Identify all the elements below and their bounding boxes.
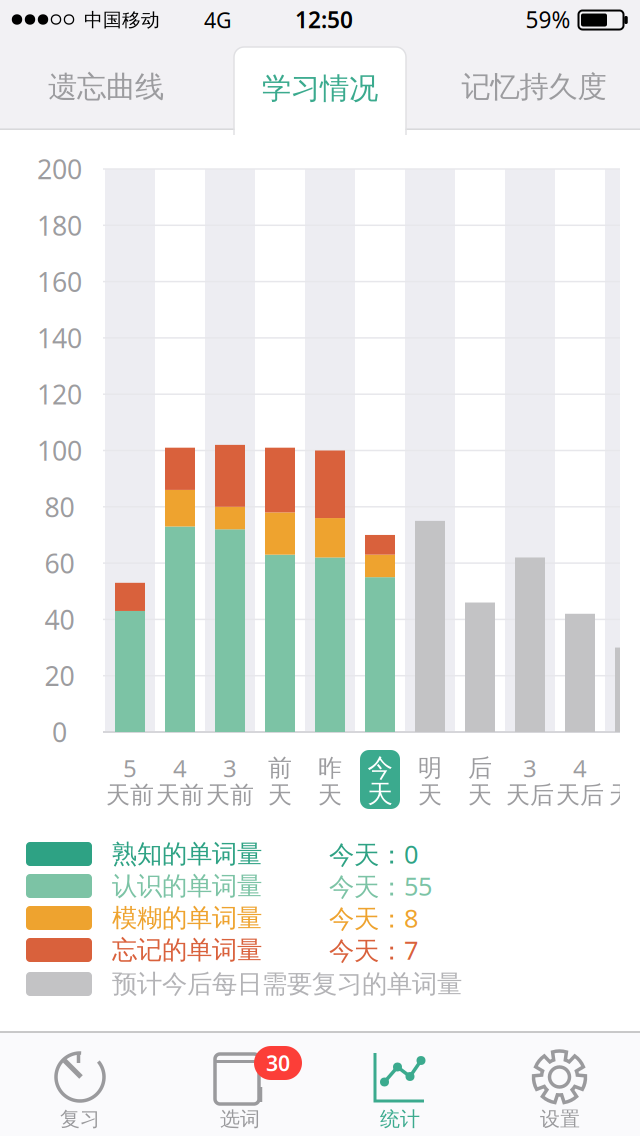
staticText: 设置 — [540, 1107, 580, 1131]
staticText: 120 — [37, 376, 82, 412]
staticText: 天后 — [506, 780, 554, 810]
staticText: 今天：7 — [329, 933, 418, 967]
staticText: 前 — [268, 753, 292, 783]
staticText: 0 — [52, 714, 67, 750]
staticText: 40 — [44, 602, 74, 637]
staticText: 遗忘曲线 — [48, 69, 164, 105]
staticText: 天前 — [206, 780, 254, 810]
staticText: 天前 — [156, 780, 204, 810]
staticText: 100 — [37, 433, 82, 468]
button[interactable]: 设置 — [480, 1032, 640, 1136]
staticText: 3 — [523, 752, 537, 784]
staticText: 天 — [468, 780, 492, 810]
staticText: 记忆持久度 — [461, 69, 606, 105]
button[interactable]: 统计 — [320, 1032, 480, 1136]
staticText: 200 — [37, 151, 82, 187]
staticText: 3 — [223, 752, 237, 784]
staticText: 忘记的单词量 — [112, 934, 262, 965]
staticText: 5 — [123, 752, 137, 784]
staticText: 昨 — [318, 753, 342, 783]
staticText: 80 — [44, 489, 74, 524]
staticText: 天 — [268, 780, 292, 810]
staticText: 认识的单词量 — [112, 870, 262, 901]
staticText: 180 — [37, 208, 82, 243]
button[interactable]: 30 — [160, 1032, 320, 1136]
staticText: 学习情况 — [262, 70, 378, 106]
button[interactable]: 遗忘曲线 — [0, 42, 212, 132]
button[interactable]: 复习 — [0, 1032, 160, 1136]
staticText: 160 — [37, 264, 82, 299]
staticText: 明 — [418, 753, 442, 783]
staticText: 30 — [266, 1049, 290, 1077]
staticText: 后 — [468, 753, 492, 783]
staticText: 今天：8 — [329, 901, 418, 935]
staticText: 今 — [367, 752, 392, 783]
staticText: 4 — [573, 752, 587, 784]
staticText: 今天：55 — [329, 869, 432, 903]
staticText: 天 — [367, 778, 392, 809]
staticText: 天 — [318, 780, 342, 810]
staticText: 59% — [525, 4, 570, 34]
staticText: 60 — [44, 545, 74, 581]
staticText: 预计今后每日需要复习的单词量 — [112, 968, 462, 999]
staticText: 熟知的单词量 — [112, 838, 262, 869]
button[interactable]: 学习情况 — [234, 47, 406, 136]
staticText: 天 — [418, 780, 442, 810]
staticText: 12:50 — [295, 4, 353, 34]
staticText: 今天：0 — [329, 837, 418, 871]
staticText: 4 — [173, 752, 187, 784]
button[interactable]: 记忆持久度 — [428, 42, 640, 132]
staticText: 天后 — [556, 780, 604, 810]
staticText: 中国移动 — [84, 8, 160, 31]
staticText: 4G — [204, 6, 232, 34]
staticText: 天前 — [106, 780, 154, 810]
staticText: 复习 — [60, 1107, 100, 1131]
staticText: 模糊的单词量 — [112, 902, 262, 933]
staticText: 20 — [44, 658, 74, 693]
staticText: 天后 — [609, 780, 640, 810]
staticText: 140 — [37, 320, 82, 356]
staticText: 选词 — [220, 1107, 260, 1131]
staticText: 统计 — [380, 1107, 420, 1131]
